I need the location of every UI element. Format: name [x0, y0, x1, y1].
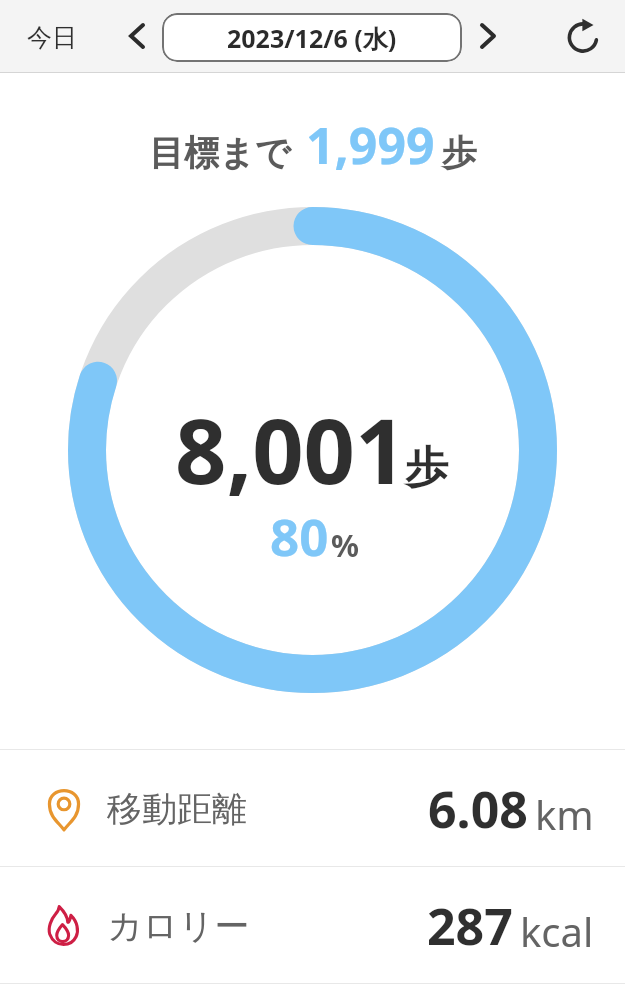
staticText: 80	[270, 501, 329, 570]
button[interactable]: Previous day	[115, 14, 159, 58]
button[interactable]: 2023/12/6 (水)	[162, 13, 462, 62]
staticText: kcal	[520, 904, 594, 958]
staticText: 移動距離	[107, 787, 247, 831]
staticText: 今日	[27, 22, 77, 53]
staticText: 1,999	[306, 111, 435, 179]
staticText: km	[535, 787, 594, 841]
button[interactable]: Next day	[466, 14, 510, 58]
staticText: 8,001	[175, 388, 407, 511]
staticText: 287	[427, 892, 513, 960]
staticText: 歩	[442, 131, 477, 175]
staticText: 歩	[405, 441, 448, 495]
button[interactable]: カロリー	[0, 867, 625, 983]
staticText: カロリー	[107, 904, 250, 948]
button[interactable]: Refresh	[557, 11, 609, 63]
staticText: 目標まで	[149, 131, 291, 175]
staticText: 6.08	[428, 775, 528, 843]
button[interactable]: 移動距離	[0, 750, 625, 866]
button[interactable]: 今日	[15, 11, 89, 64]
staticText: %	[331, 524, 359, 566]
staticText: 2023/12/6 (水)	[227, 21, 397, 55]
